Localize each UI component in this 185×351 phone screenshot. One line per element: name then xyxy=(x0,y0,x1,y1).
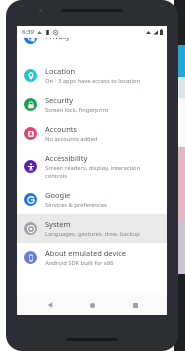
staticText: About emulated device xyxy=(45,248,127,258)
staticText: Accounts xyxy=(45,124,78,134)
staticText: Screen readers, display, interaction con… xyxy=(45,164,160,180)
button[interactable]: Location xyxy=(17,61,167,90)
button[interactable]: System xyxy=(17,214,167,243)
staticText: 6:39 xyxy=(22,28,34,36)
staticText: On - 3 apps have access to location xyxy=(45,77,141,85)
staticText: Languages, gestures, time, backup xyxy=(45,230,140,238)
button[interactable]: About emulated device xyxy=(17,243,167,272)
button[interactable]: Google xyxy=(17,185,167,214)
staticText: Services & preferences xyxy=(45,201,107,209)
button[interactable]: Security xyxy=(17,90,167,119)
button[interactable]: Back xyxy=(40,295,60,315)
staticText: Security xyxy=(45,95,74,105)
staticText: Location xyxy=(45,66,76,76)
staticText: Android SDK built for x86 xyxy=(45,259,114,267)
staticText: System xyxy=(45,219,71,229)
staticText: Google xyxy=(45,190,71,200)
button[interactable]: Home xyxy=(82,295,102,315)
button[interactable]: Privacy xyxy=(17,38,167,49)
button[interactable]: Recent apps xyxy=(125,295,145,315)
staticText: Privacy xyxy=(45,38,71,41)
button[interactable]: Accounts xyxy=(17,119,167,148)
staticText: Accessibility xyxy=(45,153,88,163)
staticText: Screen lock, fingerprint xyxy=(45,106,109,114)
button[interactable]: Accessibility xyxy=(17,148,167,185)
staticText: No accounts added xyxy=(45,135,98,143)
